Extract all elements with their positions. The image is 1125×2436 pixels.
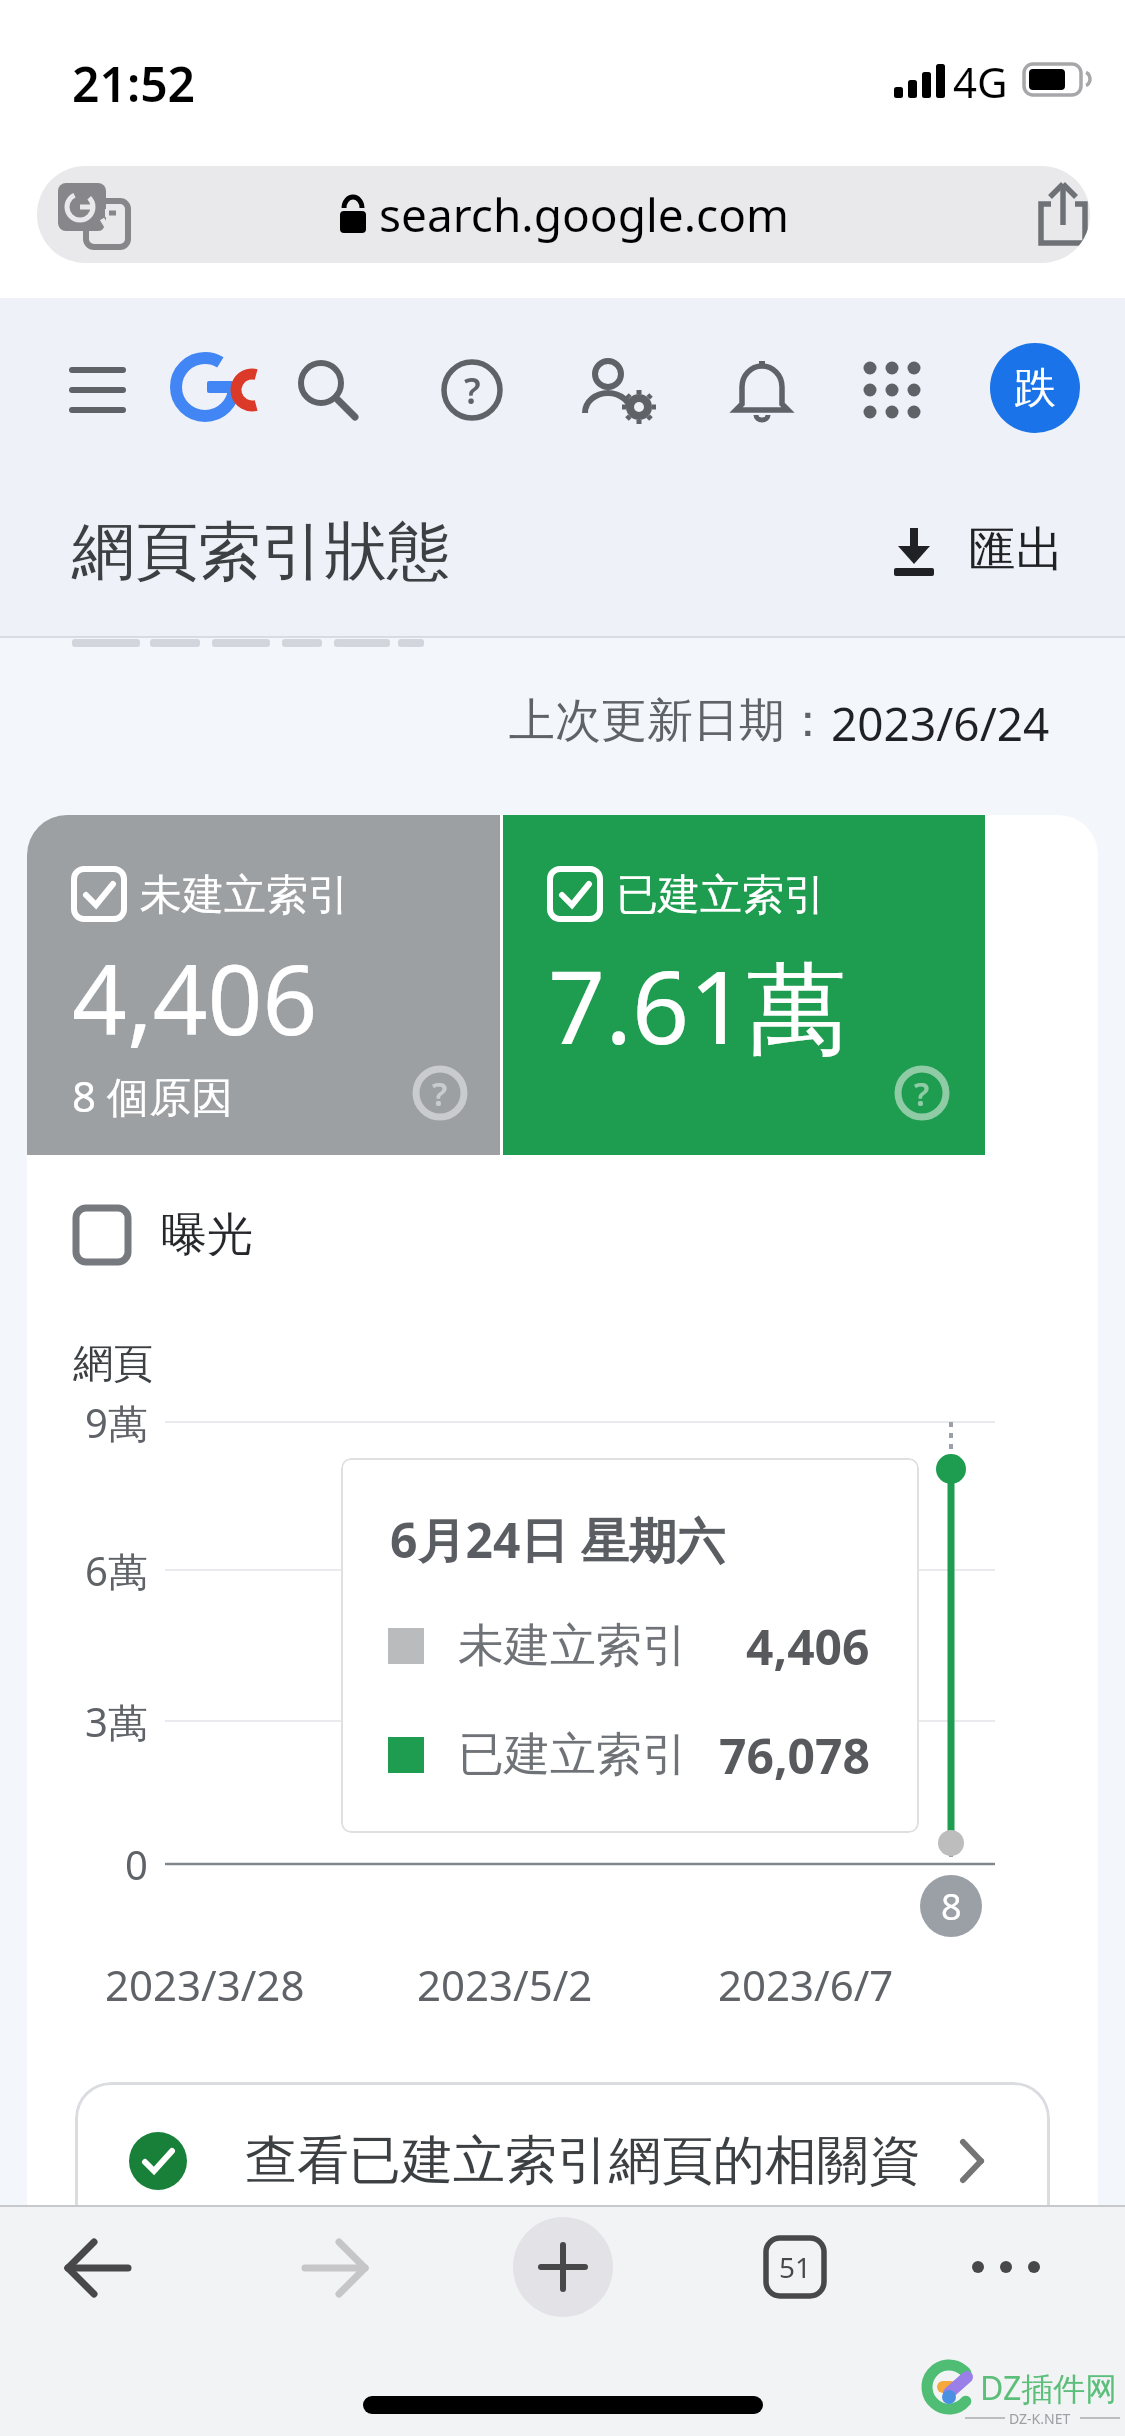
staticText: 4G bbox=[953, 53, 1008, 110]
staticText: 已建立索引 bbox=[616, 869, 826, 922]
staticText: 2023/6/7 bbox=[718, 1956, 894, 2013]
staticText: 匯出 bbox=[968, 520, 1064, 580]
staticText: 跌 bbox=[1014, 362, 1056, 415]
staticText: 21:52 bbox=[72, 51, 196, 116]
staticText: 已建立索引 bbox=[458, 1726, 688, 1784]
staticText: ? bbox=[432, 1071, 448, 1116]
staticText: 4,406 bbox=[746, 1614, 870, 1679]
staticText: 上次更新日期： bbox=[509, 692, 831, 750]
button[interactable] bbox=[288, 350, 368, 430]
button[interactable] bbox=[55, 350, 140, 430]
staticText: 4,406 bbox=[72, 932, 318, 1063]
staticText: ? bbox=[914, 1071, 930, 1116]
staticText: 2023/6/24 bbox=[831, 692, 1050, 755]
button[interactable]: 查看已建立索引網頁的相關資 bbox=[75, 2082, 1050, 2242]
button[interactable] bbox=[513, 2217, 613, 2317]
staticText: 8 個原因 bbox=[72, 1067, 233, 1124]
button[interactable]: 未建立索引 bbox=[27, 815, 500, 1155]
staticText: 7.61萬 bbox=[548, 937, 847, 1074]
staticText: 曝光 bbox=[161, 1206, 253, 1264]
button[interactable]: 已建立索引 bbox=[503, 815, 985, 1155]
staticText: 2023/5/2 bbox=[417, 1956, 593, 2013]
button[interactable] bbox=[852, 350, 932, 430]
staticText: 2023/3/28 bbox=[105, 1956, 305, 2013]
button[interactable] bbox=[48, 2230, 148, 2306]
button[interactable]: 51 bbox=[750, 2229, 840, 2305]
button[interactable] bbox=[174, 352, 266, 428]
staticText: 8 bbox=[941, 1882, 962, 1931]
button[interactable] bbox=[956, 2229, 1056, 2305]
staticText: 網頁 bbox=[73, 1338, 153, 1388]
staticText: 6萬 bbox=[85, 1543, 148, 1598]
button[interactable] bbox=[285, 2230, 385, 2306]
staticText: 9萬 bbox=[85, 1395, 148, 1450]
staticText: 網頁索引狀態 bbox=[72, 512, 450, 591]
button[interactable]: 曝光 bbox=[73, 1195, 253, 1275]
staticText: ? bbox=[464, 366, 481, 415]
staticText: 查看已建立索引網頁的相關資 bbox=[245, 2128, 921, 2194]
staticText: 0 bbox=[125, 1837, 148, 1891]
staticText: DZ插件网 bbox=[980, 2366, 1118, 2410]
staticText: 76,078 bbox=[719, 1723, 870, 1788]
staticText: DZ-K.NET bbox=[1009, 2409, 1071, 2428]
staticText: 未建立索引 bbox=[140, 869, 350, 922]
button[interactable]: search.google.com bbox=[37, 166, 1090, 263]
button[interactable]: 跌 bbox=[990, 343, 1080, 433]
button[interactable] bbox=[722, 350, 802, 430]
staticText: 未建立索引 bbox=[458, 1617, 688, 1675]
staticText: search.google.com bbox=[379, 183, 789, 246]
button[interactable] bbox=[575, 350, 660, 430]
staticText: 51 bbox=[779, 2248, 812, 2286]
staticText: 6月24日 星期六 bbox=[390, 1507, 725, 1573]
button[interactable]: ? bbox=[432, 350, 512, 430]
staticText: 3萬 bbox=[85, 1694, 148, 1749]
button[interactable]: 匯出 bbox=[888, 510, 1064, 590]
